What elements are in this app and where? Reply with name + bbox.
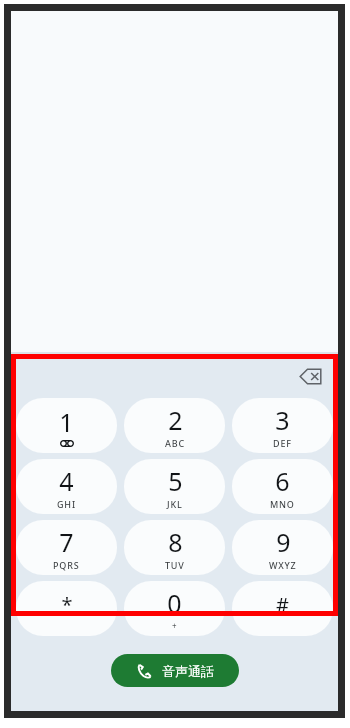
button[interactable]: Backspace [290,356,330,396]
staticText: GHI [57,498,76,510]
staticText: 8 [168,525,183,559]
button[interactable]: 7 [16,520,117,575]
staticText: * [61,591,73,618]
staticText: ABC [165,437,185,449]
staticText: 5 [168,464,183,498]
staticText: 0 [167,586,182,620]
staticText: 1 [59,405,74,439]
staticText: 3 [275,403,290,437]
button[interactable]: 5 [124,459,225,514]
staticText: 音声通話 [162,663,214,679]
button[interactable]: 9 [232,520,333,575]
staticText: DEF [273,437,292,449]
button[interactable]: 2 [124,398,225,453]
staticText: 4 [59,464,74,498]
button[interactable]: 4 [16,459,117,514]
staticText: 9 [276,525,291,559]
button[interactable]: # [232,581,333,636]
staticText: WXYZ [269,559,297,571]
staticText: TUV [165,559,185,571]
button[interactable]: 3 [232,398,333,453]
staticText: 2 [168,403,183,437]
staticText: JKL [167,498,183,510]
staticText: 6 [275,464,290,498]
button[interactable]: 0 [124,581,225,636]
staticText: PQRS [53,559,80,571]
button[interactable]: 音声通話 [111,654,239,687]
staticText: # [276,591,289,618]
staticText: 7 [59,525,74,559]
button[interactable]: 1 [16,398,117,453]
staticText: + [172,620,177,631]
button[interactable]: * [16,581,117,636]
staticText: MNO [270,498,295,510]
button[interactable]: 8 [124,520,225,575]
button[interactable]: 6 [232,459,333,514]
